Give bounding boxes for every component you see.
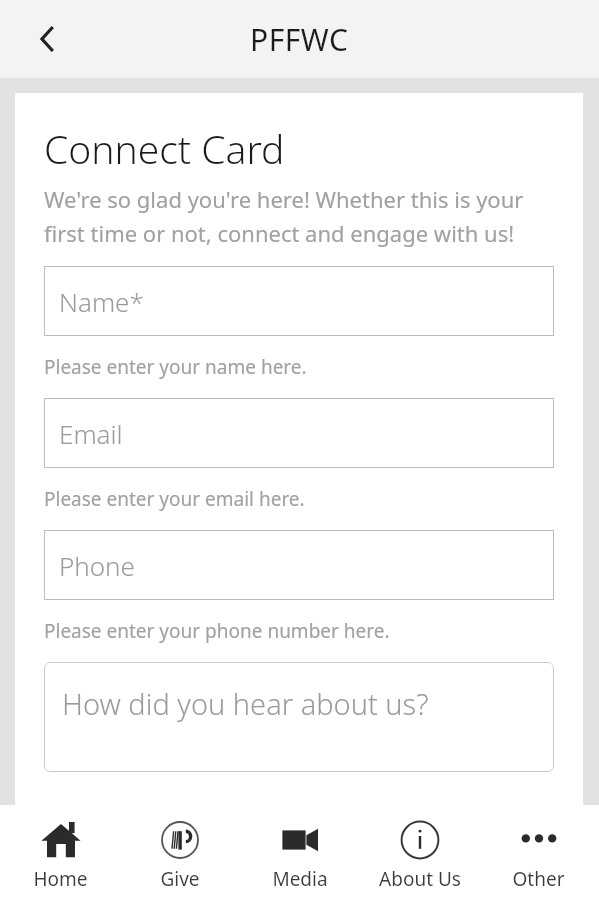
staticText: Home (33, 866, 88, 892)
button[interactable]: Back (18, 9, 78, 69)
staticText: How did you hear about us? (62, 684, 429, 723)
staticText: Other (512, 866, 565, 892)
staticText: Please enter your phone number here. (44, 618, 554, 644)
button[interactable]: Other (479, 805, 598, 892)
button[interactable]: About Us (360, 805, 479, 892)
staticText: Give (160, 866, 200, 892)
button[interactable]: How did you hear about us? (44, 662, 554, 772)
staticText: PFFWC (250, 19, 349, 60)
staticText: Please enter your name here. (44, 354, 554, 380)
staticText: Email (59, 416, 123, 451)
staticText: Media (272, 866, 328, 892)
staticText: Connect Card (44, 122, 285, 175)
staticText: About Us (379, 866, 461, 892)
button[interactable]: Give (120, 805, 239, 892)
staticText: Phone (59, 548, 135, 583)
staticText: We're so glad you're here! Whether this … (44, 184, 554, 249)
button[interactable]: Name* (44, 266, 554, 336)
button[interactable]: Phone (44, 530, 554, 600)
button[interactable]: Email (44, 398, 554, 468)
staticText: Name* (59, 284, 144, 319)
button[interactable]: Media (240, 805, 359, 892)
staticText: Please enter your email here. (44, 486, 554, 512)
button[interactable]: Home (1, 805, 120, 892)
